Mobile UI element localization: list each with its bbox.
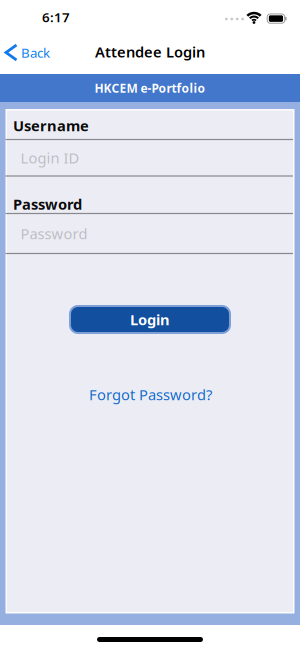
staticText: Forgot Password?: [89, 385, 212, 404]
staticText: Login: [130, 310, 170, 329]
staticText: Login ID: [20, 148, 79, 167]
staticText: Attendee Login: [95, 42, 205, 62]
button[interactable]: Login ID: [0, 139, 300, 176]
staticText: HKCEM e-Portfolio: [94, 80, 205, 96]
button[interactable]: Forgot Password?: [89, 385, 212, 404]
staticText: Password: [13, 194, 82, 214]
staticText: Username: [13, 116, 89, 135]
staticText: Password: [20, 224, 87, 243]
button[interactable]: Back: [6, 44, 50, 61]
staticText: 6:17: [42, 8, 70, 26]
button[interactable]: Login: [70, 306, 230, 333]
staticText: Back: [21, 44, 50, 61]
button[interactable]: Password: [0, 214, 300, 253]
